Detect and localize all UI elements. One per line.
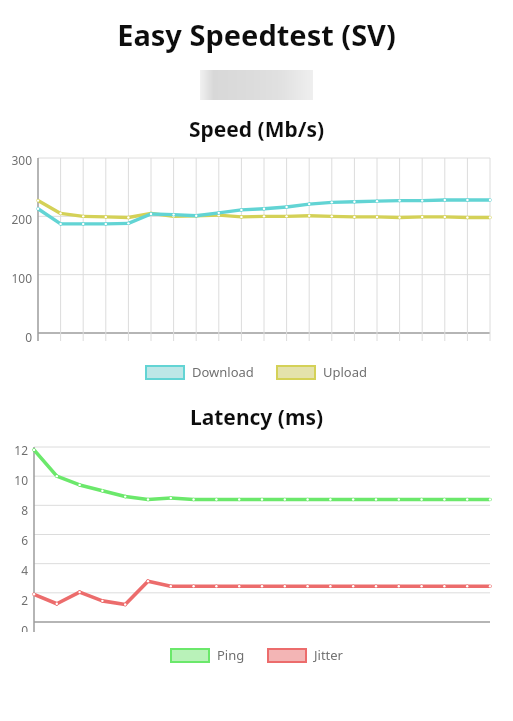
staticText: 200 (0, 211, 32, 227)
staticText: Easy Speedtest (SV) (0, 15, 513, 54)
staticText: Upload (323, 363, 368, 381)
staticText: 0 (0, 622, 28, 632)
button[interactable]: Download (140, 363, 259, 381)
staticText: 8 (0, 502, 28, 518)
other: Hidden network name (200, 70, 313, 100)
staticText: 2 (0, 592, 28, 608)
staticText: Ping (217, 646, 245, 664)
staticText: 100 (0, 270, 32, 286)
button[interactable]: Ping (165, 646, 250, 664)
staticText: Speed (Mb/s) (0, 115, 513, 144)
staticText: 0 (0, 329, 32, 345)
staticText: 10 (0, 472, 28, 488)
staticText: Download (192, 363, 254, 381)
staticText: Jitter (314, 646, 343, 664)
button[interactable]: 300 (0, 151, 513, 347)
button[interactable]: Jitter (262, 646, 348, 664)
staticText: 12 (0, 442, 28, 458)
button[interactable]: 12 (0, 442, 513, 632)
staticText: 4 (0, 562, 28, 578)
staticText: 6 (0, 532, 28, 548)
staticText: 300 (0, 152, 32, 168)
staticText: Latency (ms) (0, 403, 513, 432)
button[interactable]: Upload (271, 363, 373, 381)
